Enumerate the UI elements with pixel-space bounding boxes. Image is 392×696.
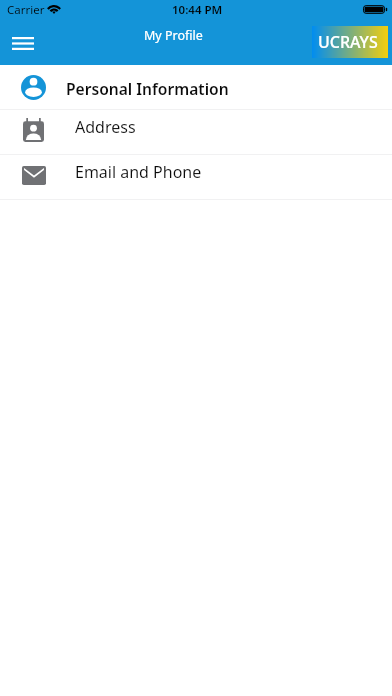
button[interactable]: Email and Phone	[0, 155, 392, 199]
button[interactable]: UCRAYS	[312, 26, 388, 58]
staticText: UCRAYS	[318, 31, 378, 53]
button[interactable]: Address	[0, 110, 392, 154]
button[interactable]: Open navigation menu	[6, 26, 40, 60]
staticText: Email and Phone	[75, 161, 202, 183]
staticText: Personal Information	[66, 78, 229, 99]
staticText: 10:44 PM	[172, 2, 223, 18]
staticText: Address	[75, 116, 136, 138]
staticText: My Profile	[144, 27, 203, 44]
button[interactable]: Personal Information	[0, 65, 392, 109]
staticText: Carrier	[7, 2, 45, 18]
